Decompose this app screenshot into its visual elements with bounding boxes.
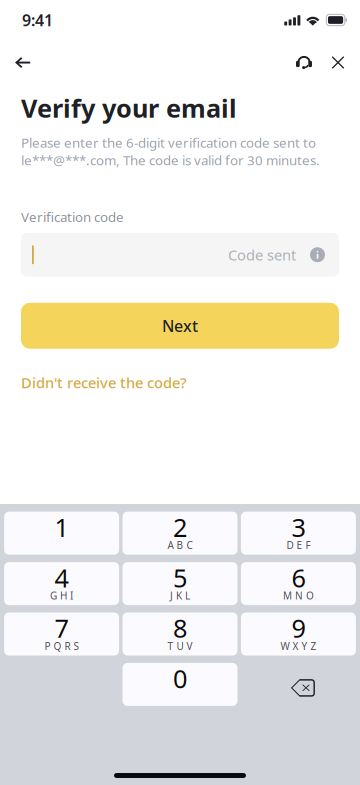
button[interactable]: Back xyxy=(15,40,49,85)
staticText: 2 xyxy=(173,510,187,544)
button[interactable]: Next xyxy=(21,303,339,349)
button[interactable]: 0 xyxy=(122,663,237,706)
button[interactable]: 9 xyxy=(241,612,356,655)
staticText: Next xyxy=(162,315,198,336)
staticText: 0 xyxy=(173,662,187,695)
button[interactable]: Close xyxy=(322,40,354,85)
button[interactable]: Didn't receive the code? xyxy=(21,373,187,392)
staticText: 9:41 xyxy=(22,9,53,31)
button[interactable]: 1 xyxy=(4,512,119,555)
staticText: 8 xyxy=(173,611,187,645)
button[interactable]: Customer support xyxy=(286,40,322,85)
staticText: 3 xyxy=(291,510,305,544)
staticText: A B C xyxy=(167,538,192,552)
staticText: Please enter the 6-digit verification co… xyxy=(21,134,320,169)
staticText: 1 xyxy=(55,510,69,544)
button[interactable]: 8 xyxy=(122,612,237,655)
button[interactable]: 7 xyxy=(4,612,119,655)
staticText: T U V xyxy=(167,639,192,653)
staticText: 5 xyxy=(173,561,187,594)
staticText: Didn't receive the code? xyxy=(21,373,187,392)
staticText: 9 xyxy=(291,611,305,645)
button[interactable]: 3 xyxy=(241,512,356,555)
staticText: W X Y Z xyxy=(280,639,316,653)
staticText: 6 xyxy=(291,561,305,594)
staticText: M N O xyxy=(283,589,314,602)
staticText: G H I xyxy=(50,589,73,602)
button[interactable]: 5 xyxy=(122,562,237,605)
button[interactable]: 4 xyxy=(4,562,119,605)
staticText: Code sent xyxy=(228,245,296,264)
staticText: Verification code xyxy=(21,208,124,226)
staticText: Verify your email xyxy=(21,91,237,125)
staticText: P Q R S xyxy=(45,639,79,653)
button[interactable]: Delete xyxy=(241,663,356,706)
staticText: J K L xyxy=(170,589,190,602)
staticText: 4 xyxy=(55,561,69,594)
staticText: 7 xyxy=(55,611,69,645)
button[interactable]: 2 xyxy=(122,512,237,555)
staticText: D E F xyxy=(286,538,310,552)
button[interactable]: 6 xyxy=(241,562,356,605)
